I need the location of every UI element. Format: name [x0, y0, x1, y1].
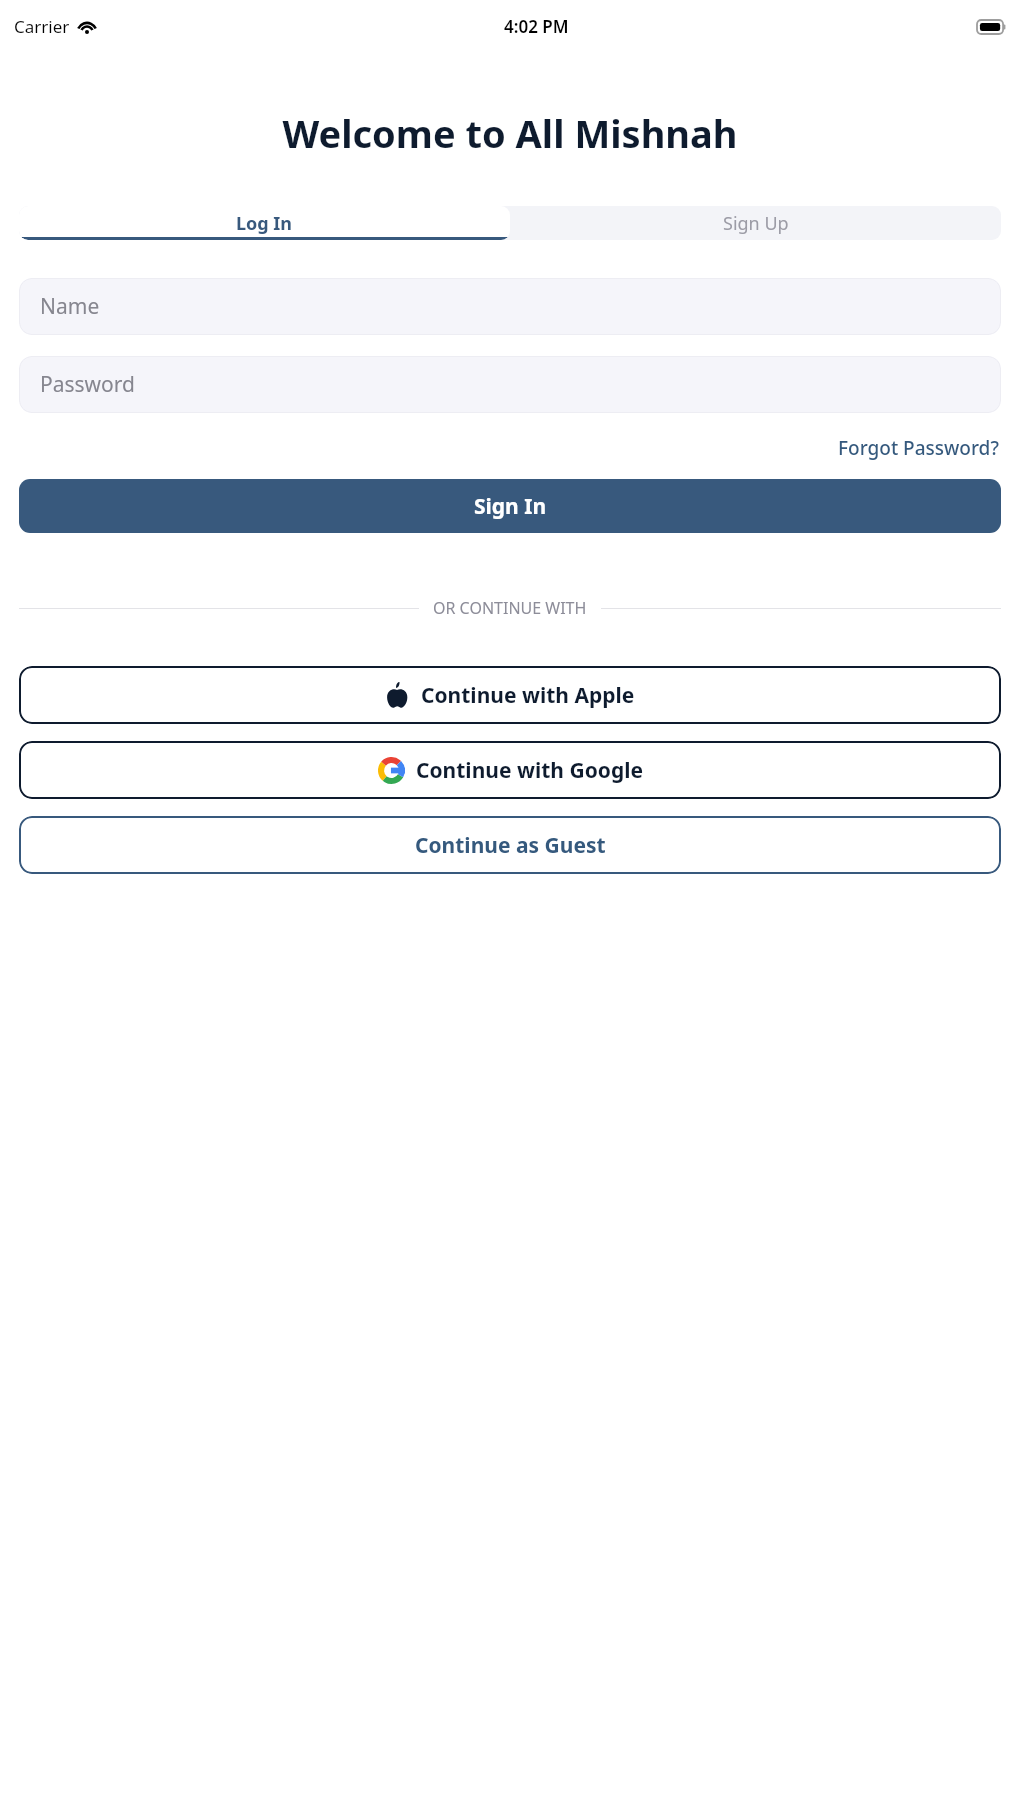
- button[interactable]: Password: [19, 356, 1001, 413]
- button[interactable]: Continue with Apple: [19, 666, 1001, 724]
- button[interactable]: Sign Up: [510, 206, 1001, 240]
- staticText: Carrier: [14, 15, 70, 38]
- staticText: Password: [40, 370, 135, 399]
- staticText: Welcome to All Mishnah: [0, 107, 1020, 159]
- button[interactable]: Sign In: [19, 479, 1001, 533]
- staticText: Continue with Google: [416, 756, 643, 785]
- button[interactable]: Log In: [19, 206, 510, 240]
- staticText: Forgot Password?: [838, 435, 999, 461]
- staticText: Log In: [236, 211, 293, 236]
- staticText: Name: [40, 292, 100, 321]
- button[interactable]: Continue as Guest: [19, 816, 1001, 874]
- button[interactable]: Continue with Google: [19, 741, 1001, 799]
- staticText: Sign In: [474, 492, 547, 521]
- button[interactable]: Name: [19, 278, 1001, 335]
- staticText: Sign Up: [723, 211, 789, 236]
- staticText: Continue with Apple: [421, 681, 635, 710]
- button[interactable]: Forgot Password?: [836, 433, 1001, 463]
- staticText: 4:02 PM: [504, 15, 569, 38]
- staticText: OR CONTINUE WITH: [433, 597, 587, 619]
- staticText: Continue as Guest: [415, 831, 606, 860]
